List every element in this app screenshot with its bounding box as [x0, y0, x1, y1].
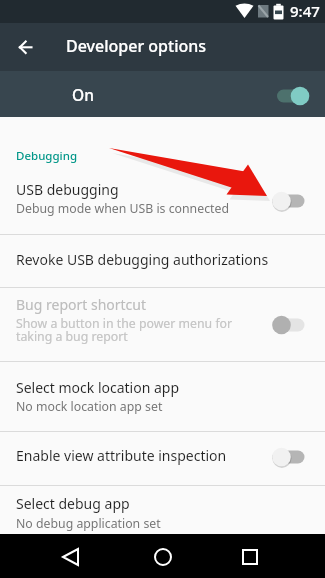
staticText: Enable view attribute inspection	[16, 446, 227, 465]
button[interactable]	[234, 540, 266, 572]
staticText: Debugging	[16, 148, 78, 164]
button[interactable]: Enable view attribute inspection	[0, 432, 325, 485]
staticText: No debug application set	[16, 515, 161, 532]
staticText: taking a bug report	[16, 328, 128, 345]
button[interactable]: Select mock location app	[0, 362, 325, 431]
staticText: USB debugging	[16, 180, 119, 199]
button[interactable]	[54, 540, 86, 572]
staticText: Select debug app	[16, 494, 130, 513]
button[interactable]	[147, 540, 179, 572]
staticText: Debug mode when USB is connected	[16, 200, 229, 217]
staticText: Show a button in the power menu for	[16, 315, 233, 332]
button[interactable]: USB debugging	[0, 168, 325, 234]
staticText: Revoke USB debugging authorizations	[16, 250, 269, 269]
staticText: 9:47	[290, 1, 320, 21]
staticText: Select mock location app	[16, 378, 180, 397]
staticText: Developer options	[66, 35, 207, 57]
staticText: Bug report shortcut	[16, 295, 147, 314]
button[interactable]: Bug report shortcut	[0, 288, 325, 361]
button[interactable]: Select debug app	[0, 486, 325, 534]
button[interactable]: Revoke USB debugging authorizations	[0, 235, 325, 287]
button[interactable]	[8, 35, 44, 71]
staticText: No mock location app set	[16, 398, 163, 415]
staticText: On	[72, 84, 94, 105]
button[interactable]: On	[0, 71, 325, 117]
